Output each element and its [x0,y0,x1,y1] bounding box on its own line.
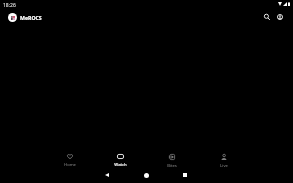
button[interactable]: Bites [146,150,198,170]
button[interactable]: Home [44,150,95,170]
button[interactable]: Back [97,165,117,183]
button[interactable]: Home [136,165,156,183]
staticText: Home [64,162,76,168]
staticText: 18:26 [3,2,16,9]
staticText: Bites [167,163,177,169]
staticText: MeROCS [20,14,42,21]
staticText: Live [220,163,228,169]
button[interactable]: Search [259,9,275,25]
button[interactable]: Watch [95,150,146,170]
button[interactable]: Account [272,9,288,25]
staticText: Watch [114,162,127,168]
button[interactable]: Live [198,150,250,170]
button[interactable]: Recent apps [175,165,195,183]
